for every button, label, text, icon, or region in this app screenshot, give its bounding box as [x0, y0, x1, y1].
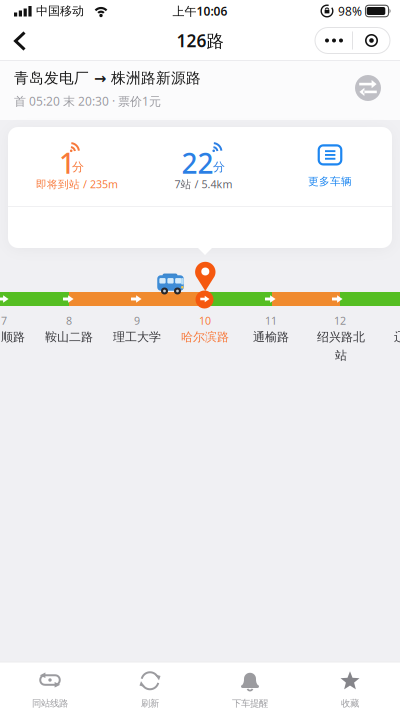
button[interactable]: 更多车辆 — [275, 133, 385, 201]
staticText: 7站 / 5.4km — [174, 177, 232, 191]
staticText: 首 05:20 末 20:30 · 票价1元 — [14, 93, 161, 109]
staticText: 22 — [181, 144, 213, 182]
staticText: 顺路 — [1, 330, 25, 344]
staticText: 即将到站 / 235m — [36, 177, 118, 191]
staticText: 11 — [265, 313, 277, 328]
button[interactable]: 同站线路 — [0, 665, 100, 710]
staticText: 98% — [338, 3, 362, 19]
button[interactable]: 返回 — [0, 0, 400, 710]
button[interactable]: 关闭 — [0, 0, 400, 710]
staticText: 7 — [1, 313, 7, 328]
staticText: 12 — [334, 313, 346, 328]
staticText: 126路 — [176, 29, 223, 52]
staticText: 10 — [199, 313, 211, 328]
staticText: 更多车辆 — [308, 175, 352, 188]
staticText: 中国移动 — [36, 4, 84, 18]
staticText: 鞍山二路 — [45, 330, 93, 344]
button[interactable]: 更多 — [0, 0, 400, 710]
staticText: 青岛发电厂 → 株洲路新源路 — [14, 69, 201, 87]
staticText: 收藏 — [341, 698, 359, 709]
button[interactable]: 收藏 — [300, 665, 400, 710]
staticText: 下车提醒 — [232, 698, 268, 709]
staticText: 分 — [72, 160, 84, 174]
button[interactable]: 切换方向 — [355, 75, 381, 101]
staticText: 1 — [59, 144, 75, 182]
staticText: 通榆路 — [253, 330, 289, 344]
staticText: 分 — [213, 160, 225, 174]
staticText: 8 — [66, 313, 72, 328]
staticText: 同站线路 — [32, 698, 68, 709]
staticText: 哈尔滨路 — [181, 330, 229, 344]
button[interactable]: 刷新 — [100, 665, 200, 710]
staticText: 理工大学 — [113, 330, 161, 344]
staticText: 刷新 — [141, 698, 159, 709]
button[interactable]: 下车提醒 — [200, 665, 300, 710]
staticText: 站 — [335, 348, 347, 363]
staticText: 上午10:06 — [172, 3, 227, 19]
staticText: 辽阳 — [394, 330, 400, 344]
staticText: 绍兴路北 — [317, 330, 365, 344]
staticText: 9 — [134, 313, 140, 328]
